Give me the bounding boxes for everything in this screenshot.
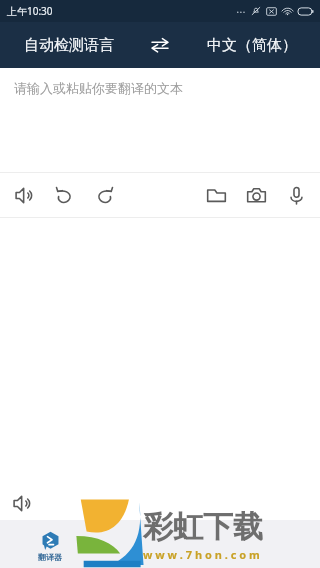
staticText: 请输入或粘贴你要翻译的文本 [14,80,183,96]
staticText: 上午10:30 [7,4,53,18]
staticText: 翻译器 [38,552,62,562]
button[interactable]: 自动检测语言 [0,22,137,68]
button[interactable]: Speak translation [4,486,40,520]
staticText: 自动检测语言 [24,36,114,55]
button[interactable]: Camera [236,175,276,215]
staticText: 彩虹下载 [143,508,263,546]
button[interactable]: Voice input [276,175,316,215]
button[interactable]: Undo [44,175,84,215]
staticText: w w w . 7 h o n . c o m [143,547,260,562]
button[interactable]: 请输入或粘贴你要翻译的文本 [0,68,320,173]
button[interactable]: Open file [196,175,236,215]
button[interactable]: Redo [84,175,124,215]
button[interactable]: Speak [4,175,44,215]
button[interactable]: 中文（简体） [183,22,320,68]
staticText: 中文（简体） [207,36,297,55]
button[interactable]: Swap languages [137,22,183,68]
